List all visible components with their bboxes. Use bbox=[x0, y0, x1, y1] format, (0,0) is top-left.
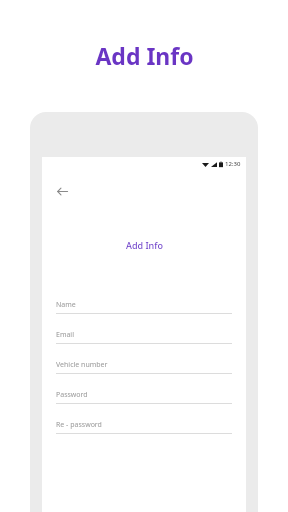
button[interactable]: Name bbox=[56, 297, 232, 327]
staticText: Re - password bbox=[56, 420, 102, 430]
button[interactable]: Password bbox=[56, 387, 232, 417]
staticText: Vehicle number bbox=[56, 360, 108, 370]
staticText: Name bbox=[56, 300, 76, 310]
button[interactable]: Vehicle number bbox=[56, 357, 232, 387]
staticText: Add Info bbox=[126, 239, 163, 251]
button[interactable]: Back bbox=[50, 179, 74, 203]
staticText: Password bbox=[56, 390, 88, 400]
staticText: Email bbox=[56, 330, 74, 340]
button[interactable]: Email bbox=[56, 327, 232, 357]
staticText: Add Info bbox=[95, 40, 194, 71]
staticText: 12:30 bbox=[225, 160, 241, 168]
button[interactable]: Re - password bbox=[56, 417, 232, 447]
